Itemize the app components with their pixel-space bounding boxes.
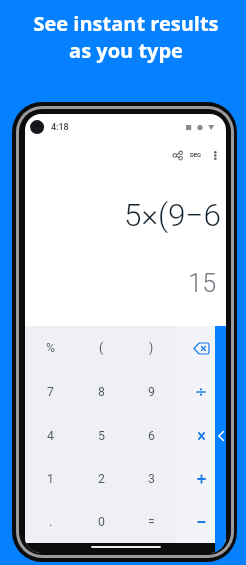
button[interactable]: Multiply [176,414,226,457]
button[interactable]: 4 [25,414,76,457]
button[interactable]: Divide [176,370,226,414]
button[interactable]: Minus [176,500,226,543]
staticText: 3 [148,472,155,486]
staticText: See instant results [33,10,219,37]
staticText: ( [99,341,104,355]
staticText: . [49,515,53,529]
staticText: 8 [98,385,105,399]
button[interactable]: 9 [126,370,176,414]
button[interactable]: . [25,500,76,543]
staticText: as you type [69,37,183,64]
button[interactable]: % [25,326,76,370]
staticText: 0 [98,515,105,529]
button[interactable]: ) [126,326,176,370]
other: Multiply [198,432,205,440]
button[interactable]: More options [206,145,225,165]
button[interactable]: = [126,500,176,543]
button[interactable]: 8 [76,370,126,414]
staticText: ) [149,341,154,355]
staticText: 5 [98,429,105,443]
other: Plus [198,475,205,483]
button[interactable]: 0 [76,500,126,543]
staticText: 9 [148,385,155,399]
staticText: 4:18 [51,122,69,133]
staticText: 2 [98,472,105,486]
button[interactable]: 7 [25,370,76,414]
button[interactable]: Previous screenshot [215,428,226,444]
other: Divide [197,388,205,396]
button[interactable]: 6 [126,414,176,457]
button[interactable]: 1 [25,457,76,500]
button[interactable]: DEG [186,145,206,165]
button[interactable]: 2 [76,457,126,500]
button[interactable]: Share [167,145,187,165]
staticText: 15 [25,269,216,298]
staticText: % [46,341,56,355]
button[interactable]: Backspace [176,326,226,370]
other: Backspace [194,343,209,354]
button[interactable]: 5 [76,414,126,457]
staticText: = [148,515,155,529]
button[interactable]: Plus [176,457,226,500]
staticText: DEG [190,152,202,159]
staticText: 7 [47,385,54,399]
staticText: 4 [47,429,54,443]
button[interactable]: ( [76,326,126,370]
button[interactable]: 3 [126,457,176,500]
staticText: 5×(9−6 [25,197,221,234]
staticText: 1 [47,472,54,486]
staticText: 6 [148,429,155,443]
